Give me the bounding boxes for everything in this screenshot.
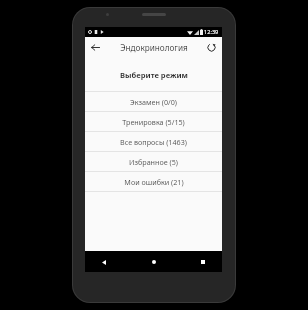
button[interactable]: Refresh (204, 40, 219, 55)
staticText: Выберите режим (120, 70, 188, 80)
button[interactable]: Экзамен (0/0) (85, 92, 222, 111)
button[interactable]: Избранное (5) (85, 152, 222, 171)
staticText: Мои ошибки (21) (124, 177, 184, 187)
button[interactable]: Все вопросы (1463) (85, 132, 222, 151)
staticText: Эндокринология (120, 42, 188, 53)
button[interactable]: Тренировка (5/15) (85, 112, 222, 131)
staticText: 12:39 (204, 28, 219, 36)
button[interactable]: Мои ошибки (21) (85, 172, 222, 191)
button[interactable]: Back (88, 40, 103, 55)
staticText: Все вопросы (1463) (120, 137, 187, 147)
button[interactable]: Back (97, 255, 111, 269)
button[interactable]: Recent apps (196, 255, 210, 269)
staticText: Избранное (5) (129, 157, 178, 167)
staticText: Экзамен (0/0) (130, 97, 177, 107)
button[interactable]: Home (147, 255, 161, 269)
staticText: Тренировка (5/15) (122, 117, 185, 127)
